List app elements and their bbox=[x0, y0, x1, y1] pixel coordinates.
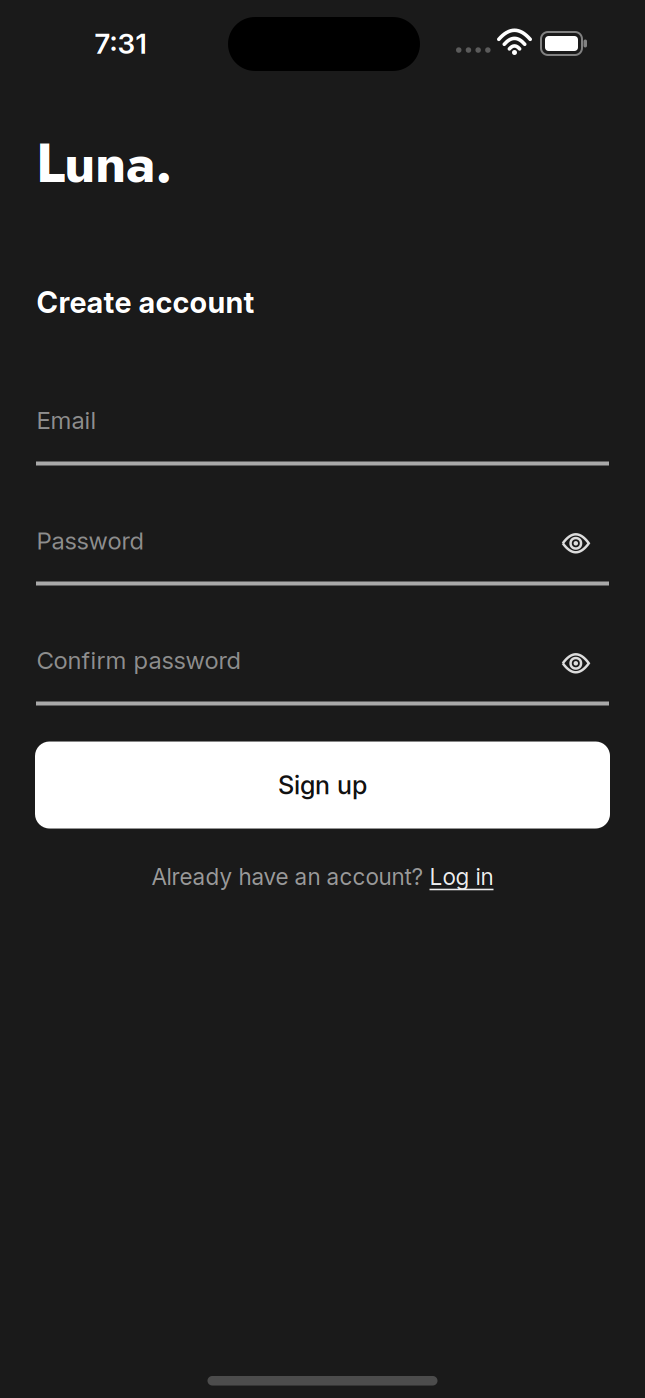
staticText: Sign up bbox=[278, 770, 367, 800]
button[interactable]: Log in bbox=[429, 863, 493, 890]
textField[interactable]: Confirm password bbox=[36, 646, 609, 705]
button[interactable]: Show confirm password bbox=[561, 651, 591, 675]
staticText: 7:31 bbox=[94, 27, 146, 60]
staticText: Log in bbox=[429, 863, 493, 890]
staticText: Already have an account? bbox=[151, 863, 429, 890]
staticText: Confirm password bbox=[36, 646, 240, 674]
staticText: Luna. bbox=[36, 123, 173, 202]
textField[interactable]: Email bbox=[36, 406, 609, 465]
button[interactable]: Sign up bbox=[35, 741, 610, 828]
staticText: Password bbox=[36, 526, 143, 555]
staticText: Create account bbox=[36, 285, 254, 320]
textField[interactable]: Password bbox=[36, 526, 609, 585]
button[interactable]: Show password bbox=[561, 531, 591, 555]
staticText: Email bbox=[36, 406, 96, 434]
